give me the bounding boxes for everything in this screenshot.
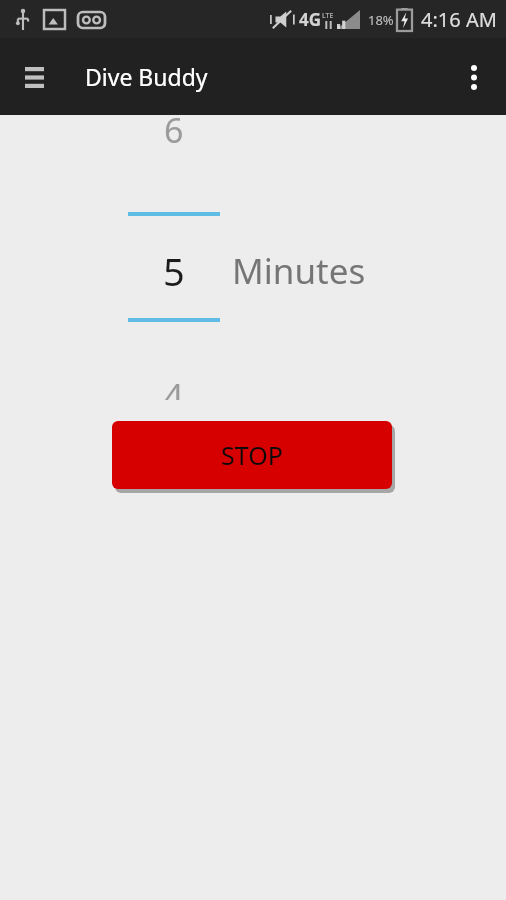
staticText: 4 [164,373,184,400]
button[interactable]: Open navigation drawer [10,53,58,101]
staticText: 4G [299,8,322,31]
staticText: 6 [164,115,184,153]
button[interactable]: STOP [112,421,392,489]
staticText: LTE [322,11,334,21]
staticText: STOP [221,438,283,472]
staticText: Dive Buddy [85,61,208,92]
staticText: 4:16 AM [421,6,497,33]
staticText: Minutes [232,247,366,295]
staticText: 5 [163,245,185,297]
button[interactable]: More options [450,53,498,101]
staticText: 18% [368,11,394,29]
button[interactable]: Minutes picker [128,115,220,400]
